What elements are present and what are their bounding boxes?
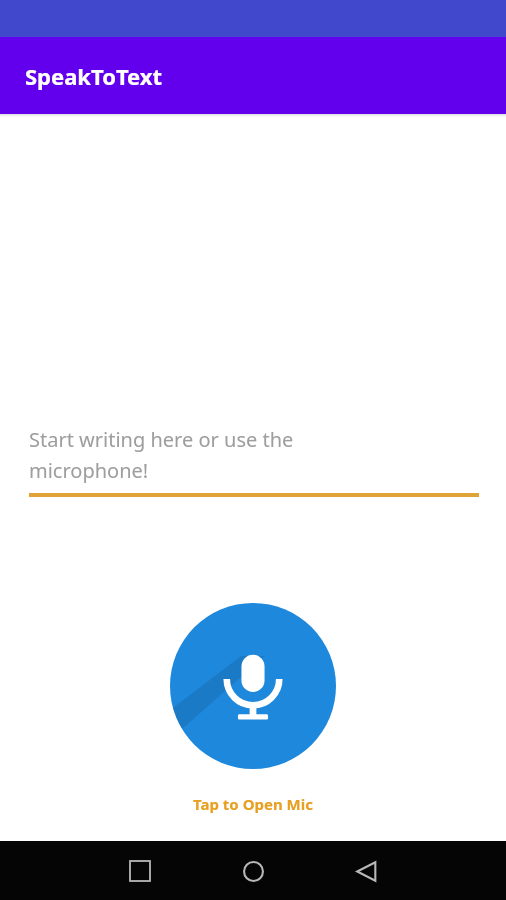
- staticText: Start writing here or use the microphone…: [29, 426, 294, 483]
- staticText: SpeakToText: [25, 61, 162, 91]
- button[interactable]: Tap to Open Mic: [170, 603, 336, 769]
- button[interactable]: Tap to Open Mic: [0, 794, 506, 814]
- button[interactable]: Home: [226, 844, 280, 898]
- button[interactable]: Start writing here or use the microphone…: [29, 426, 479, 497]
- button[interactable]: Back: [339, 844, 393, 898]
- button[interactable]: Recents: [113, 844, 167, 898]
- staticText: Tap to Open Mic: [193, 794, 313, 814]
